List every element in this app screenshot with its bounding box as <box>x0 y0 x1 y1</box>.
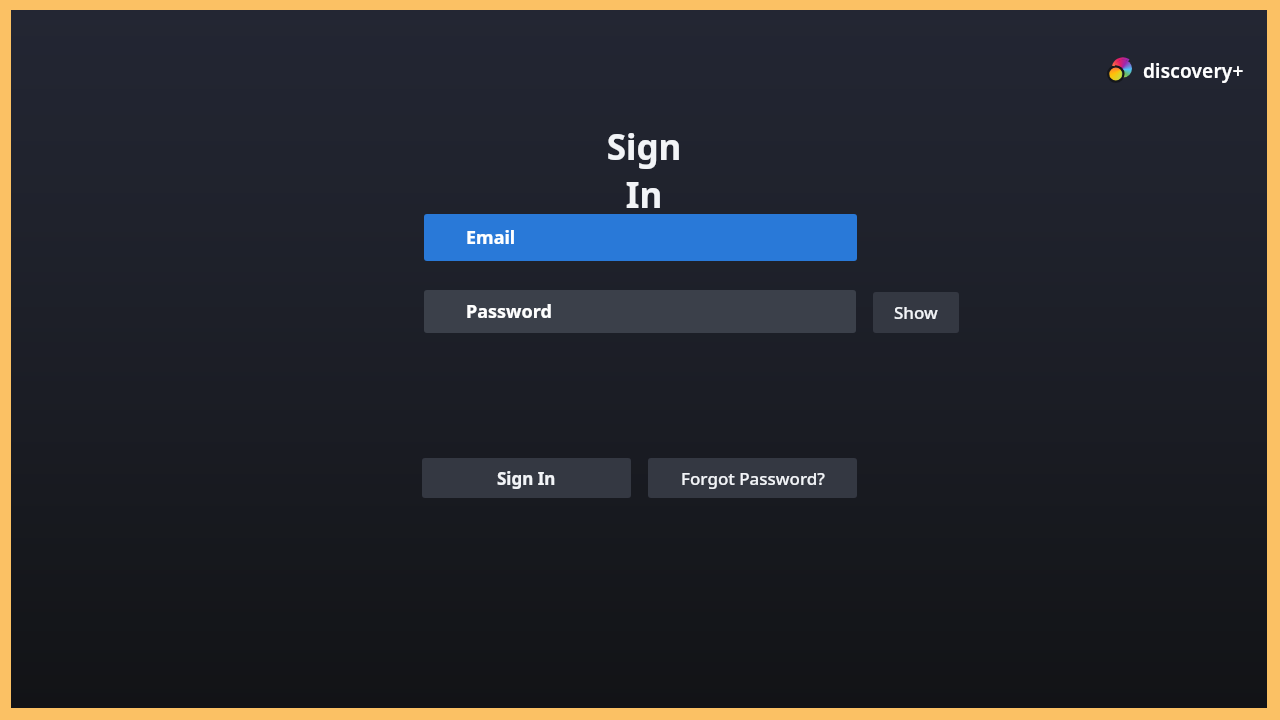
button[interactable]: Email <box>424 214 857 261</box>
staticText: discovery+ <box>1143 58 1244 84</box>
button[interactable]: discovery plus <box>1105 56 1244 86</box>
staticText: Forgot Password? <box>681 467 825 490</box>
staticText: Email <box>466 225 516 250</box>
button[interactable]: Show <box>873 292 959 333</box>
staticText: Show <box>894 301 938 324</box>
staticText: Password <box>466 299 552 324</box>
staticText: Sign In <box>584 123 704 219</box>
button[interactable]: Forgot Password? <box>648 458 857 498</box>
staticText: Sign In <box>497 467 556 490</box>
button[interactable]: Sign In <box>422 458 631 498</box>
button[interactable]: Password <box>424 290 856 333</box>
